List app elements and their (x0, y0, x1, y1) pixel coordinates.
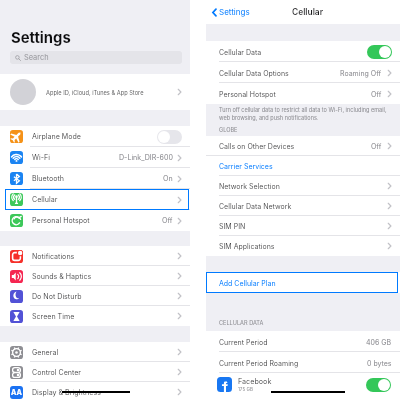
staticText: D-Link_DIR-600 (119, 153, 173, 162)
staticText: On (163, 174, 173, 183)
button[interactable] (366, 378, 391, 392)
button[interactable]: Cellular (0, 189, 190, 210)
staticText: Turn off cellular data to restrict all d… (219, 107, 396, 121)
staticText: Search (24, 53, 49, 62)
staticText: Settings (11, 29, 71, 47)
staticText: Settings (219, 7, 250, 17)
button[interactable]: General (0, 342, 190, 362)
button[interactable]: Calls on Other Devices (206, 136, 400, 156)
staticText: Control Center (32, 368, 82, 377)
button[interactable]: Facebook (206, 373, 400, 404)
staticText: Display & Brightness (32, 388, 101, 397)
button[interactable]: Control Center (0, 362, 190, 382)
button[interactable]: Personal Hotspot (206, 83, 400, 104)
button[interactable]: Do Not Disturb (0, 286, 190, 306)
staticText: Off (371, 90, 382, 98)
button[interactable]: Personal Hotspot (0, 210, 190, 231)
staticText: Notifications (32, 252, 75, 261)
button[interactable]: Add Cellular Plan (206, 272, 400, 293)
button[interactable]: Airplane Mode (0, 126, 190, 147)
staticText: General (32, 348, 59, 357)
button[interactable]: SIM PIN (206, 216, 400, 236)
button[interactable] (157, 130, 182, 144)
button[interactable]: Carrier Services (206, 156, 400, 176)
staticText: CELLULAR DATA (219, 320, 264, 327)
button[interactable]: SIM Applications (206, 236, 400, 256)
staticText: Facebook (238, 377, 272, 386)
staticText: Bluetooth (32, 174, 64, 183)
button[interactable] (367, 45, 392, 59)
staticText: SIM Applications (219, 242, 275, 250)
button[interactable]: Current Period Roaming (206, 352, 400, 373)
button[interactable]: Network Selection (206, 176, 400, 196)
staticText: 0 bytes (367, 359, 392, 367)
staticText: 175 GB (238, 387, 253, 393)
button[interactable]: Settings (212, 0, 250, 24)
button[interactable]: Notifications (0, 246, 190, 266)
staticText: Cellular (292, 7, 324, 17)
button[interactable]: Current Period (206, 331, 400, 352)
button[interactable]: Bluetooth (0, 168, 190, 189)
button[interactable]: Apple ID, iCloud, iTunes & App Store (0, 74, 190, 110)
button[interactable]: Sounds & Haptics (0, 266, 190, 286)
staticText: Personal Hotspot (219, 90, 276, 98)
staticText: Current Period (219, 338, 268, 346)
staticText: Current Period Roaming (219, 359, 299, 367)
button[interactable]: Screen Time (0, 306, 190, 326)
button[interactable]: Cellular Data (206, 41, 400, 62)
staticText: Apple ID, iCloud, iTunes & App Store (46, 89, 144, 96)
staticText: Calls on Other Devices (219, 142, 295, 150)
staticText: Off (371, 142, 382, 150)
staticText: Sounds & Haptics (32, 272, 92, 281)
staticText: Wi-Fi (32, 153, 50, 162)
staticText: Screen Time (32, 312, 75, 321)
staticText: Off (162, 216, 173, 225)
staticText: Network Selection (219, 182, 280, 190)
staticText: GLOBE (219, 127, 238, 134)
staticText: Personal Hotspot (32, 216, 90, 225)
staticText: SIM PIN (219, 222, 246, 230)
staticText: Add Cellular Plan (219, 279, 276, 287)
button[interactable]: Cellular Data Options (206, 62, 400, 83)
staticText: Carrier Services (219, 162, 273, 170)
staticText: Cellular Data (219, 48, 262, 56)
staticText: Cellular Data Options (219, 69, 289, 77)
button[interactable]: Wi-Fi (0, 147, 190, 168)
staticText: Do Not Disturb (32, 292, 82, 301)
staticText: Roaming Off (340, 69, 382, 77)
staticText: Airplane Mode (32, 132, 81, 141)
staticText: 406 GB (366, 338, 392, 346)
button[interactable]: AA (0, 382, 190, 404)
staticText: AA (11, 388, 22, 397)
staticText: Cellular (32, 195, 58, 204)
button[interactable]: Cellular Data Network (206, 196, 400, 216)
button[interactable]: Search (10, 51, 182, 64)
staticText: Cellular Data Network (219, 202, 292, 210)
